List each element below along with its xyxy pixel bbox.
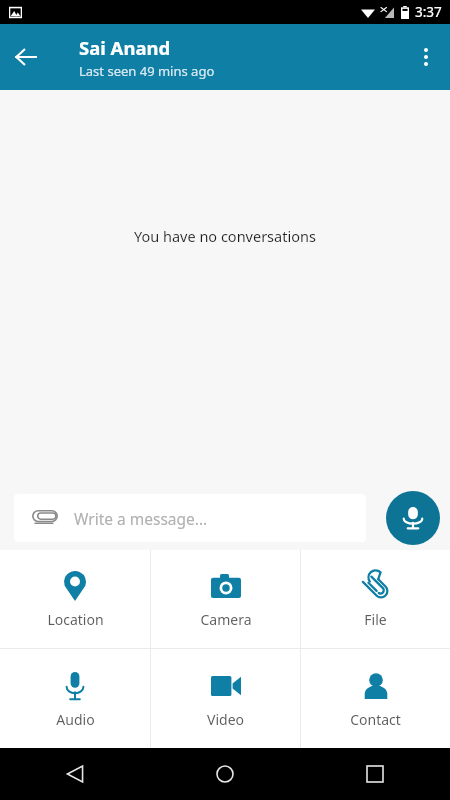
staticText: Last seen 49 mins ago [79,62,215,80]
staticText: Camera [200,610,252,629]
button[interactable]: More options [402,33,450,81]
button[interactable]: Home [150,748,300,800]
staticText: Write a message... [74,508,208,529]
button[interactable]: Camera [151,550,300,648]
staticText: Video [207,710,244,729]
button[interactable]: Contact [301,649,450,748]
staticText: Audio [56,710,95,729]
staticText: You have no conversations [134,226,316,246]
staticText: 3:37 [415,3,442,21]
button[interactable]: Video [151,649,300,748]
button[interactable]: Audio [0,649,150,748]
staticText: File [364,610,387,629]
button[interactable]: Record voice message [386,491,440,545]
button[interactable]: Write a message... [14,494,366,542]
staticText: Contact [350,710,401,729]
staticText: Sai Anand [79,35,171,60]
button[interactable]: File [301,550,450,648]
button[interactable]: Back [0,31,52,83]
button[interactable]: Recent apps [300,748,450,800]
button[interactable]: Back [0,748,150,800]
button[interactable]: Location [0,550,150,648]
staticText: Location [47,610,104,629]
